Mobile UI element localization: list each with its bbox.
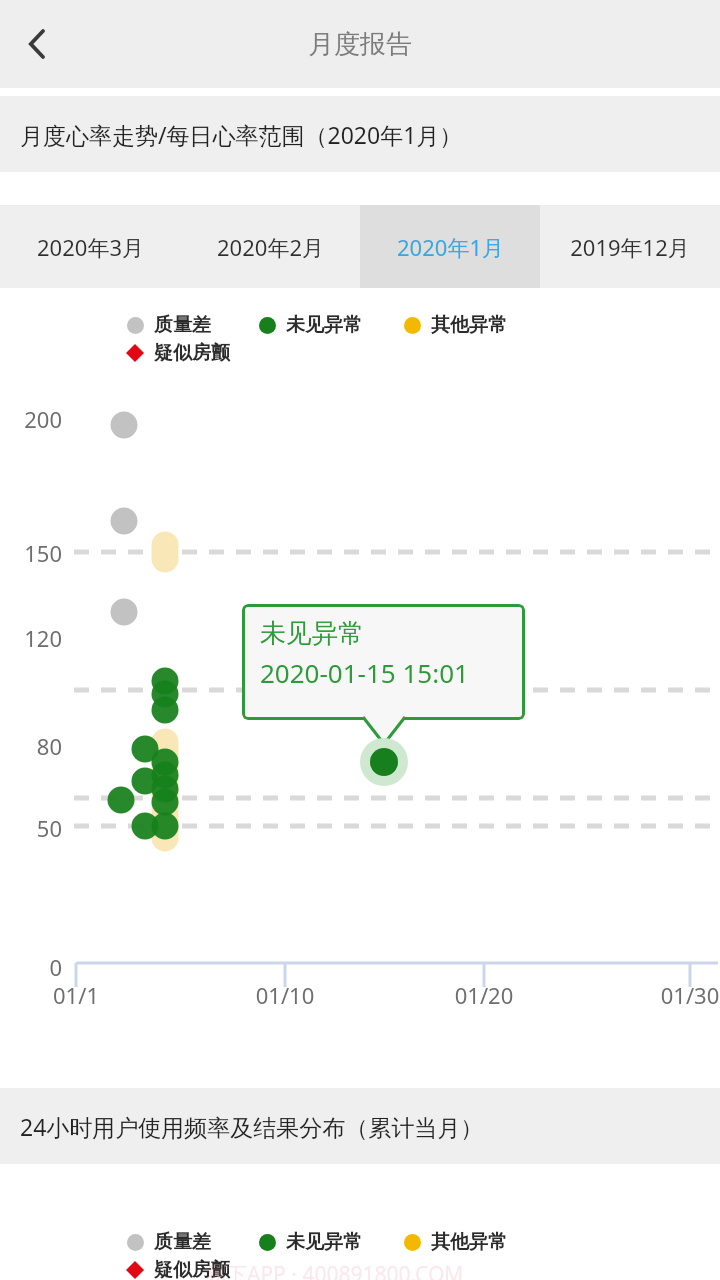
button[interactable]: 质量差 [127,317,144,334]
button[interactable]: 未见异常 [242,604,525,720]
staticText: 01/1 [16,980,136,1010]
staticText: 未见异常 [260,617,364,650]
staticText: 未见异常 [286,313,362,337]
staticText: 80 [0,731,62,761]
button[interactable]: 2019年12月 [540,205,720,288]
button[interactable]: 疑似房颤 [126,344,144,362]
staticText: 0 [0,952,62,982]
staticText: 120 [0,623,62,653]
button[interactable]: 2020年2月 [180,205,360,288]
staticText: 01/20 [424,980,544,1010]
staticText: 01/30 [630,980,720,1010]
staticText: 疑似房颤 [154,341,230,365]
button[interactable]: 其他异常 [404,1234,421,1251]
button[interactable]: 未见异常 [259,317,276,334]
staticText: 2020年1月 [397,232,504,262]
staticText: 其他异常 [431,313,507,337]
button[interactable]: 2020年1月 [360,205,540,288]
staticText: 易下APP · 400891800.COM [205,1260,464,1280]
button[interactable]: 2020年3月 [0,205,180,288]
staticText: 150 [0,538,62,568]
staticText: 2020年3月 [37,232,144,262]
staticText: 质量差 [154,1230,211,1254]
staticText: 月度心率走势/每日心率范围（2020年1月） [20,119,463,150]
staticText: 2020-01-15 15:01 [260,655,469,690]
button[interactable]: 质量差 [127,1234,144,1251]
button[interactable]: 其他异常 [404,317,421,334]
staticText: 疑似房颤 [154,1258,230,1280]
staticText: 200 [0,404,62,434]
staticText: 01/10 [225,980,345,1010]
staticText: 月度报告 [308,28,412,61]
button[interactable]: Back [0,0,76,88]
staticText: 2019年12月 [570,232,690,262]
staticText: 其他异常 [431,1230,507,1254]
button[interactable]: 疑似房颤 [126,1261,144,1279]
staticText: 2020年2月 [217,232,324,262]
staticText: 24小时用户使用频率及结果分布（累计当月） [20,1111,484,1142]
staticText: 质量差 [154,313,211,337]
staticText: 50 [0,813,62,843]
button[interactable]: 未见异常 [259,1234,276,1251]
staticText: 未见异常 [286,1230,362,1254]
